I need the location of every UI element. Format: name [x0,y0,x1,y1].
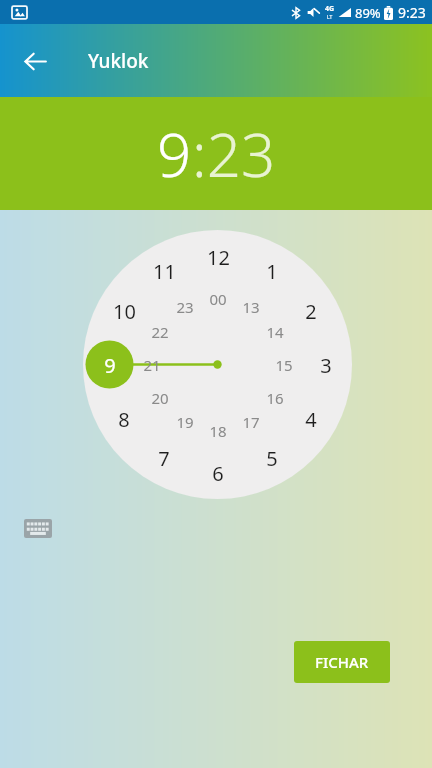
button[interactable]: 9 [157,113,192,195]
button[interactable]: 18 [202,420,234,442]
staticText: 17 [242,412,260,432]
staticText: 14 [266,322,284,342]
button[interactable]: 19 [169,411,201,433]
button[interactable]: 20 [144,387,176,409]
staticText: 5 [266,445,278,471]
staticText: 3 [320,352,332,378]
staticText: 00 [209,289,227,309]
button[interactable]: 6 [200,460,236,486]
staticText: 4 [305,406,317,432]
button[interactable]: 4 [293,406,329,432]
staticText: 15 [275,355,293,375]
button[interactable]: 14 [259,321,291,343]
button[interactable]: 15 [268,354,300,376]
button[interactable]: 12 [200,244,236,270]
button[interactable]: 22 [144,321,176,343]
button[interactable]: 10 [106,298,142,324]
button[interactable]: 2 [293,298,329,324]
button[interactable]: Clock face hour picker [83,230,352,499]
staticText: 9:23 [398,3,426,22]
staticText: 21 [143,355,161,375]
staticText: FICHAR [315,652,369,672]
staticText: 23 [176,297,194,317]
button[interactable]: :23 [192,113,276,195]
button[interactable]: Back [12,38,58,84]
staticText: 8 [118,406,130,432]
button[interactable]: 11 [146,258,182,284]
staticText: 19 [176,412,194,432]
button[interactable]: 21 [136,354,168,376]
staticText: 11 [153,258,176,284]
staticText: 16 [266,388,284,408]
button[interactable]: 9 [92,352,128,378]
button[interactable]: 17 [235,411,267,433]
staticText: 1 [266,258,278,284]
button[interactable]: 23 [169,296,201,318]
staticText: 9 [104,352,116,378]
staticText: 4G [325,4,335,14]
button[interactable]: 7 [146,445,182,471]
button[interactable]: 16 [259,387,291,409]
button[interactable]: FICHAR [294,641,390,683]
button[interactable]: 3 [308,352,344,378]
staticText: 10 [113,298,136,324]
staticText: 7 [158,445,170,471]
button[interactable]: 8 [106,406,142,432]
staticText: LT [327,14,333,21]
button[interactable]: 5 [254,445,290,471]
staticText: 6 [212,460,224,486]
staticText: 2 [305,298,317,324]
staticText: 12 [207,244,230,270]
staticText: Yuklok [88,48,149,74]
button[interactable]: Switch to keyboard input [20,511,56,545]
button[interactable]: 13 [235,296,267,318]
staticText: 13 [242,297,260,317]
button[interactable]: 00 [202,288,234,310]
staticText: 22 [151,322,169,342]
staticText: 18 [209,421,227,441]
staticText: 20 [151,388,169,408]
button[interactable]: 1 [254,258,290,284]
staticText: 89% [355,4,381,22]
